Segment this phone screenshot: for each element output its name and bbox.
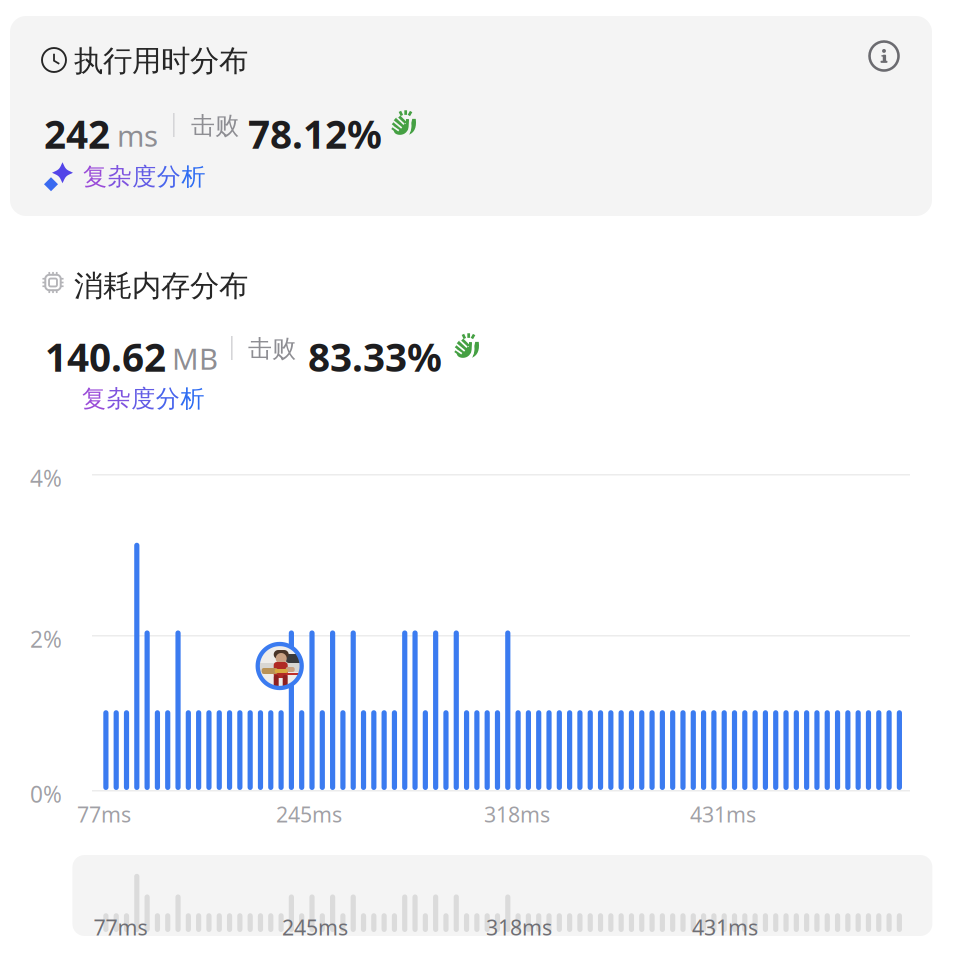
staticText: 318ms — [486, 913, 552, 941]
staticText: 分 — [156, 384, 180, 413]
staticText: 77ms — [93, 913, 147, 941]
staticText: 分 — [157, 162, 181, 191]
staticText: 431ms — [692, 913, 758, 941]
staticText: 318ms — [484, 800, 550, 828]
button[interactable]: 指标说明 — [858, 30, 910, 82]
staticText: MB — [172, 339, 218, 378]
staticText: 杂 — [107, 384, 131, 413]
staticText: 78.12% — [248, 108, 382, 159]
staticText: 4% — [30, 463, 62, 493]
staticText: 消耗内存分布 — [74, 268, 248, 304]
staticText: 431ms — [690, 800, 756, 828]
staticText: 2% — [30, 624, 62, 654]
staticText: 242 — [44, 108, 110, 159]
staticText: 击败 — [191, 111, 239, 140]
staticText: 杂 — [108, 162, 132, 191]
staticText: 度 — [131, 384, 155, 413]
button[interactable]: 复 — [44, 162, 205, 191]
staticText: 析 — [181, 162, 205, 191]
staticText: 复 — [82, 384, 106, 413]
staticText: 245ms — [276, 800, 342, 828]
staticText: 执行用时分布 — [74, 43, 248, 79]
staticText: 245ms — [282, 913, 348, 941]
staticText: 击败 — [248, 334, 296, 363]
staticText: 度 — [132, 162, 156, 191]
staticText: 77ms — [77, 800, 131, 828]
staticText: 析 — [180, 384, 204, 413]
staticText: 83.33% — [308, 331, 442, 382]
staticText: 0% — [30, 779, 62, 809]
staticText: 复 — [83, 162, 107, 191]
staticText: ms — [117, 116, 158, 155]
staticText: 140.62 — [45, 331, 166, 382]
button[interactable]: 复 — [82, 384, 204, 413]
